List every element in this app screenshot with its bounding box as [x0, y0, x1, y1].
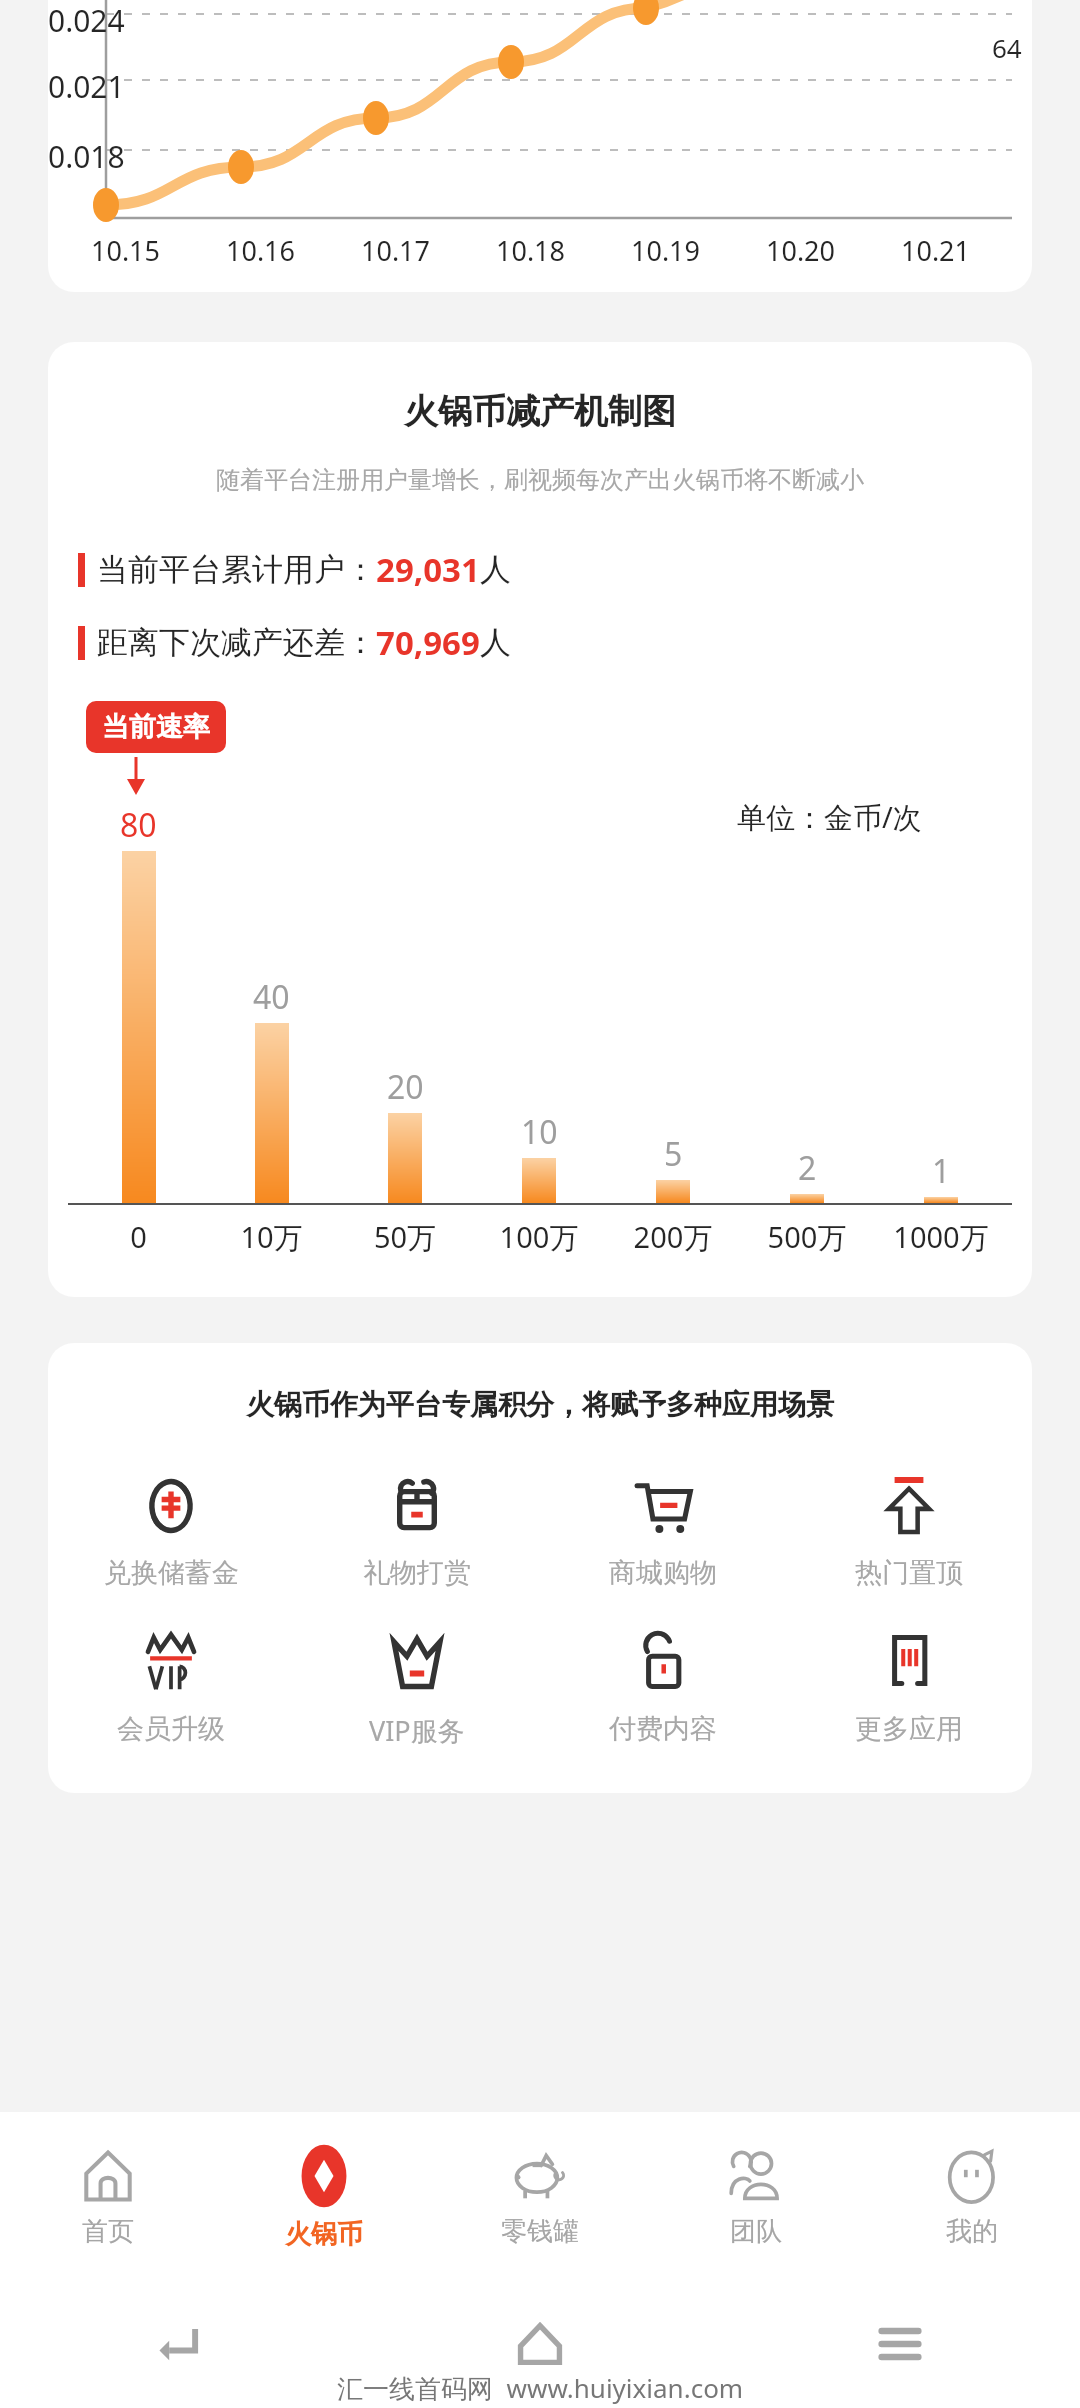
staticText: 火锅币作为平台专属积分，将赋予多种应用场景: [48, 1387, 1032, 1422]
button[interactable]: 距离下次减产还差：: [78, 620, 1032, 665]
button[interactable]: 当前平台累计用户：: [78, 547, 1032, 592]
staticText: 80: [120, 803, 157, 847]
staticText: 汇一线首码网 www.huiyixian.com: [337, 2370, 744, 2406]
staticText: 29,031: [376, 547, 480, 592]
staticText: 兑换储蓄金: [104, 1556, 239, 1590]
staticText: 10.15: [58, 232, 193, 269]
button[interactable]: Back: [0, 2280, 360, 2408]
staticText: 10.19: [598, 232, 733, 269]
staticText: 50万: [338, 1217, 472, 1257]
staticText: 10: [521, 1110, 558, 1154]
staticText: 首页: [82, 2215, 134, 2248]
staticText: 团队: [730, 2215, 782, 2248]
staticText: 人: [480, 550, 511, 589]
button[interactable]: Recents: [720, 2280, 1080, 2408]
staticText: 64: [992, 30, 1022, 65]
staticText: 100万: [472, 1217, 606, 1257]
staticText: VIP服务: [369, 1712, 465, 1749]
staticText: 会员升级: [117, 1712, 225, 1746]
button[interactable]: VIP服务: [294, 1626, 540, 1749]
staticText: 礼物打赏: [363, 1556, 471, 1590]
staticText: 500万: [740, 1217, 874, 1257]
staticText: 当前速率: [102, 710, 210, 744]
button[interactable]: 商城购物: [540, 1470, 786, 1590]
button[interactable]: 团队: [648, 2135, 864, 2258]
staticText: 火锅币减产机制图: [48, 390, 1032, 433]
staticText: 1000万: [874, 1217, 1008, 1257]
button[interactable]: 火锅币减产机制图: [48, 342, 1032, 1297]
button[interactable]: 当前速率: [86, 701, 226, 753]
button[interactable]: 兑换储蓄金: [48, 1470, 294, 1590]
staticText: 10.17: [328, 232, 463, 269]
staticText: 随着平台注册用户量增长，刷视频每次产出火锅币将不断减小: [60, 465, 1020, 495]
button[interactable]: 付费内容: [540, 1626, 786, 1746]
button[interactable]: Home: [360, 2280, 720, 2408]
button[interactable]: 更多应用: [786, 1626, 1032, 1746]
staticText: 火锅币: [285, 2218, 363, 2251]
staticText: 距离下次减产还差：: [97, 623, 376, 662]
staticText: 0: [72, 1217, 205, 1256]
staticText: 10.20: [733, 232, 868, 269]
button[interactable]: 会员升级: [48, 1626, 294, 1746]
button[interactable]: 首页: [0, 2135, 216, 2258]
button[interactable]: 礼物打赏: [294, 1470, 540, 1590]
staticText: 0.018: [48, 136, 125, 177]
staticText: 10.16: [193, 232, 328, 269]
staticText: 我的: [946, 2215, 998, 2248]
button[interactable]: 零钱罐: [432, 2135, 648, 2258]
staticText: 0.021: [48, 66, 125, 107]
button[interactable]: 火锅币: [216, 2132, 432, 2261]
staticText: 200万: [606, 1217, 740, 1257]
staticText: 5: [664, 1132, 683, 1176]
staticText: 商城购物: [609, 1556, 717, 1590]
staticText: 70,969: [376, 620, 480, 665]
staticText: 1: [932, 1149, 951, 1193]
staticText: 10.18: [463, 232, 598, 269]
button[interactable]: 热门置顶: [786, 1470, 1032, 1590]
staticText: 当前平台累计用户：: [97, 550, 376, 589]
staticText: 2: [798, 1146, 817, 1190]
staticText: 更多应用: [855, 1712, 963, 1746]
button[interactable]: 火锅币作为平台专属积分，将赋予多种应用场景: [48, 1343, 1032, 1793]
staticText: 10.21: [868, 232, 1003, 269]
staticText: 人: [480, 623, 511, 662]
staticText: 20: [387, 1065, 424, 1109]
staticText: 付费内容: [609, 1712, 717, 1746]
staticText: 热门置顶: [855, 1556, 963, 1590]
staticText: 0.024: [48, 0, 125, 41]
staticText: 零钱罐: [501, 2215, 579, 2248]
staticText: 单位：金币/次: [737, 797, 922, 837]
staticText: 40: [253, 975, 290, 1019]
button[interactable]: 我的: [864, 2135, 1080, 2258]
staticText: 10万: [205, 1217, 338, 1257]
button[interactable]: 0.024: [48, 0, 1032, 292]
